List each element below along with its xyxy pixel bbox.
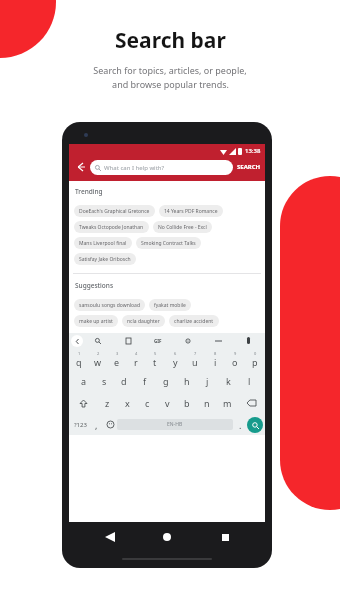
staticText: d [121,375,127,387]
button[interactable]: Back [72,158,90,176]
button[interactable]: 6 [165,348,185,370]
button[interactable]: sansoulu songs download [74,299,145,311]
staticText: 9 [234,351,237,356]
button[interactable]: Search [83,334,113,347]
button[interactable]: m [217,392,237,414]
staticText: and browse popular trends. [112,78,229,90]
staticText: 8 [214,351,217,356]
staticText: z [105,397,110,409]
staticText: a [81,375,87,387]
button[interactable]: 5 [145,348,165,370]
button[interactable]: What can I help with? [90,160,233,175]
staticText: 4 [135,351,138,356]
button[interactable]: x [117,392,137,414]
button[interactable]: charlize accident [169,315,219,327]
button[interactable]: Voice [233,334,263,347]
button[interactable]: No Collide Free - Excl [153,221,212,233]
staticText: 2 [97,351,100,356]
button[interactable]: z [97,392,117,414]
staticText: GIF [154,338,162,344]
button[interactable]: f [134,370,155,392]
button[interactable]: 2 [88,348,107,370]
staticText: fyakat mobile [154,302,186,309]
staticText: w [94,356,102,368]
staticText: j [206,375,209,387]
button[interactable]: Search [247,417,263,433]
button[interactable]: Space [117,419,233,430]
staticText: f [143,375,147,387]
staticText: r [134,356,138,368]
button[interactable]: k [218,370,239,392]
button[interactable]: c [137,392,157,414]
staticText: 6 [174,351,177,356]
staticText: 3 [116,351,119,356]
button[interactable]: GIF [143,334,173,347]
staticText: b [184,397,190,409]
button[interactable]: Recents [215,527,235,547]
button[interactable]: v [157,392,177,414]
staticText: EN-HB [167,421,183,428]
button[interactable]: Emoji [103,414,117,435]
staticText: ncla daughter [127,318,160,325]
button[interactable]: Mans Liverpool final [74,237,132,249]
staticText: p [252,356,258,368]
button[interactable]: Home [157,527,177,547]
staticText: 5 [154,351,157,356]
staticText: 1 [78,351,81,356]
staticText: Search for topics, articles, or people, [93,64,247,76]
button[interactable]: g [155,370,176,392]
button[interactable]: n [197,392,217,414]
staticText: Trending [75,187,103,196]
button[interactable]: 1 [69,348,88,370]
button[interactable]: make up artist [74,315,118,327]
button[interactable]: Satisfay Jake Oribosch [74,253,136,265]
button[interactable]: Settings [173,334,203,347]
button[interactable]: Period [233,414,247,435]
staticText: s [102,375,107,387]
button[interactable]: h [176,370,197,392]
button[interactable]: Shift [69,392,97,414]
staticText: ?123 [74,421,87,429]
button[interactable]: SEARCH [236,163,262,171]
staticText: y [173,356,178,368]
button[interactable]: DoeEach's Graphical Gretonce [74,205,155,217]
staticText: Suggestions [75,281,114,290]
staticText: 0 [254,351,257,356]
button[interactable]: 3 [107,348,126,370]
button[interactable]: Back [100,527,120,547]
button[interactable]: Tweaks Octopode Jonathan [74,221,149,233]
staticText: v [165,397,170,409]
button[interactable]: Collapse toolbar [71,335,83,347]
button[interactable]: a [74,370,94,392]
button[interactable]: fyakat mobile [149,299,191,311]
button[interactable]: 8 [205,348,225,370]
button[interactable]: ncla daughter [122,315,165,327]
button[interactable]: 0 [245,348,265,370]
staticText: g [163,375,169,387]
staticText: , [95,419,98,431]
button[interactable]: l [239,370,260,392]
staticText: m [223,397,232,409]
staticText: DoeEach's Graphical Gretonce [79,208,150,215]
button[interactable]: Clipboard [113,334,143,347]
button[interactable]: 9 [225,348,245,370]
staticText: charlize accident [174,318,214,325]
staticText: SEARCH [237,163,261,171]
staticText: l [248,375,251,387]
staticText: 7 [194,351,197,356]
button[interactable]: j [197,370,218,392]
staticText: Mans Liverpool final [79,240,127,247]
button[interactable]: d [114,370,134,392]
button[interactable]: 7 [185,348,205,370]
button[interactable]: b [177,392,197,414]
button[interactable]: s [94,370,114,392]
button[interactable]: 14 Years PDF Romance [159,205,223,217]
button[interactable]: Smoking Contract Talks [136,237,201,249]
button[interactable]: ?123 [71,414,89,435]
button[interactable]: 4 [126,348,145,370]
button[interactable]: Comma [89,414,103,435]
button[interactable]: Backspace [237,392,265,414]
staticText: . [239,419,242,431]
staticText: Tweaks Octopode Jonathan [79,224,144,231]
button[interactable]: More [203,334,233,347]
